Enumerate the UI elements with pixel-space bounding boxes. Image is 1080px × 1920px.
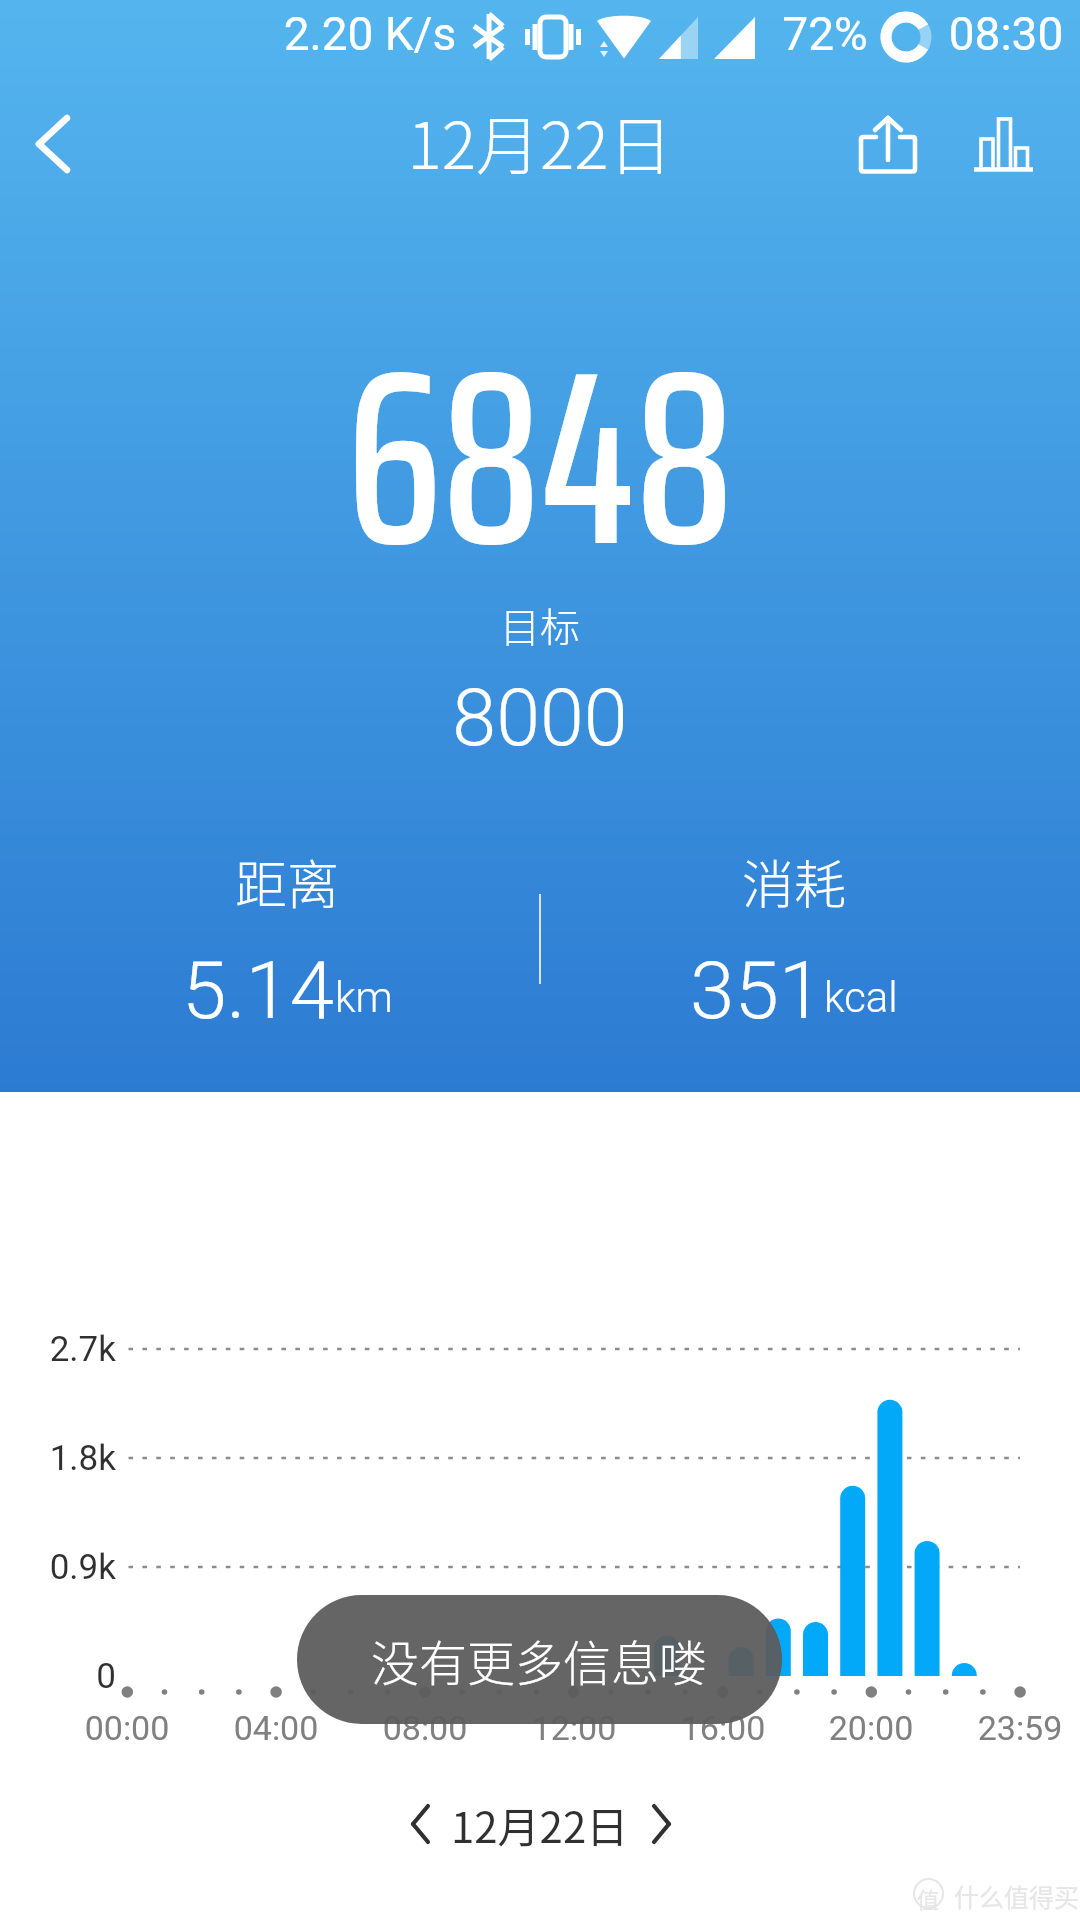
staticText: 72% — [705, 7, 945, 61]
staticText: 6848 — [140, 265, 940, 651]
staticText: 目标 — [140, 596, 940, 654]
staticText: 16:00 — [603, 1708, 843, 1748]
staticText: 12:00 — [454, 1708, 694, 1748]
staticText: 20:00 — [751, 1708, 991, 1748]
staticText: 0.9k — [2, 1547, 116, 1588]
staticText: 距离 — [0, 844, 687, 919]
staticText: 值 — [917, 1882, 940, 1913]
staticText: 5.14 — [182, 944, 335, 1038]
staticText: km — [335, 973, 393, 1022]
staticText: 08:00 — [305, 1708, 545, 1748]
staticText: 12月22日 — [451, 1794, 629, 1855]
staticText: 什么值得买 — [954, 1878, 1080, 1914]
button[interactable]: Previous day — [392, 1788, 450, 1860]
staticText: 04:00 — [156, 1708, 396, 1748]
button[interactable]: Share — [845, 104, 931, 188]
staticText: 00:00 — [7, 1708, 247, 1748]
staticText: 8000 — [140, 672, 940, 765]
staticText: kcal — [824, 973, 898, 1022]
button[interactable]: Back — [18, 108, 88, 180]
staticText: 没有更多信息喽 — [371, 1625, 708, 1695]
button[interactable]: Statistics — [962, 104, 1048, 188]
staticText: 0 — [2, 1656, 116, 1697]
staticText: 12月22日 — [140, 95, 940, 188]
button[interactable]: Next day — [632, 1788, 690, 1860]
staticText: 1.8k — [2, 1438, 116, 1479]
staticText: 2.7k — [2, 1329, 116, 1370]
staticText: 2.20 K/s — [170, 7, 570, 61]
staticText: 23:59 — [900, 1708, 1080, 1748]
staticText: 351 — [690, 944, 824, 1038]
staticText: 消耗 — [394, 844, 1080, 919]
staticText: 08:30 — [886, 7, 1080, 61]
button[interactable]: 12月22日 — [440, 1788, 640, 1860]
